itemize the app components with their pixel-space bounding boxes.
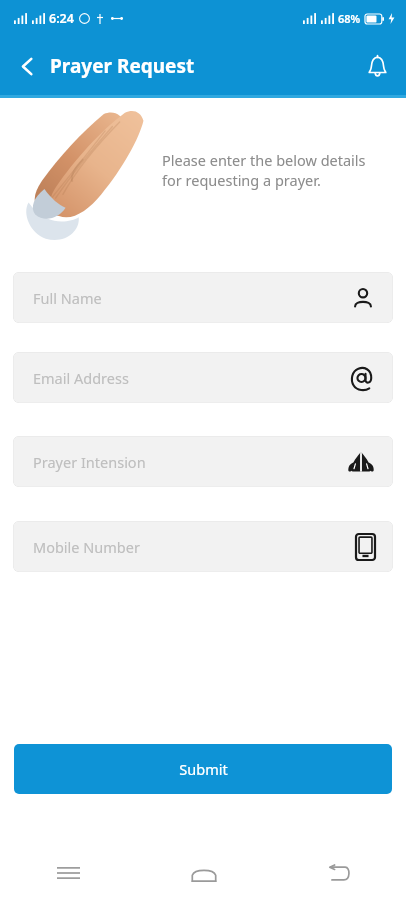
staticText: 6:24 [49,10,74,27]
button[interactable]: Back [6,45,48,87]
button[interactable]: Home [136,846,271,900]
staticText: Prayer Intension [33,452,146,472]
staticText: 68% [338,11,361,26]
staticText: Full Name [33,288,102,308]
button[interactable]: Recent apps [0,846,136,900]
button[interactable]: Back [271,846,406,900]
staticText: for requesting a prayer. [162,170,321,190]
button[interactable]: Email Address [13,352,393,403]
button[interactable]: Prayer Intension [13,436,393,487]
button[interactable]: Full Name [13,272,393,323]
staticText: Prayer Request [50,53,195,79]
button[interactable]: Notifications [356,45,398,87]
staticText: Mobile Number [33,537,140,557]
staticText: Please enter the below details [162,150,366,170]
button[interactable]: Mobile Number [13,521,393,572]
button[interactable]: Submit [14,744,392,794]
staticText: Email Address [33,368,129,388]
staticText: Submit [179,759,228,779]
